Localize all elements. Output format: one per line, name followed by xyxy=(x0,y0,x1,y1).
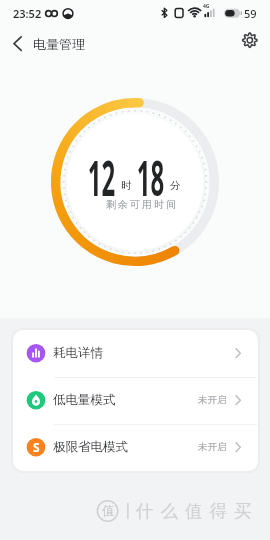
button[interactable] xyxy=(238,28,262,52)
button[interactable] xyxy=(13,330,258,377)
staticText: 剩余可用时间 xyxy=(105,198,177,211)
staticText: 59 xyxy=(244,6,257,21)
staticText: 极限省电模式 xyxy=(53,439,128,455)
staticText: S xyxy=(33,439,40,455)
staticText: 分 xyxy=(170,179,181,192)
staticText: 12 xyxy=(88,145,115,205)
staticText: 低电量模式 xyxy=(53,392,116,408)
button[interactable] xyxy=(13,424,258,471)
staticText: 4G xyxy=(203,3,210,10)
staticText: 耗电详情 xyxy=(53,345,103,361)
staticText: 电量管理 xyxy=(33,36,85,52)
staticText: 时 xyxy=(121,179,132,192)
button[interactable] xyxy=(6,32,30,56)
button[interactable] xyxy=(13,377,258,424)
staticText: 未开启 xyxy=(198,441,227,453)
staticText: 23:52 xyxy=(13,6,42,21)
staticText: 18 xyxy=(137,145,164,205)
staticText: 未开启 xyxy=(198,394,227,406)
staticText: 什么值得买 xyxy=(136,500,259,522)
staticText: 值 xyxy=(102,503,115,519)
